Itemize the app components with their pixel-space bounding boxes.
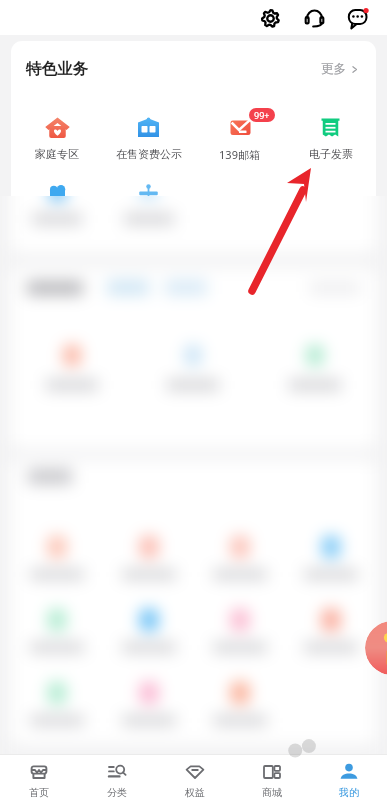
button[interactable]: 更多 xyxy=(321,61,358,77)
staticText: 家庭专区 xyxy=(35,147,79,161)
button[interactable] xyxy=(285,536,376,580)
button[interactable]: Customer service xyxy=(298,2,330,34)
button[interactable]: Promotion xyxy=(365,621,387,675)
button[interactable] xyxy=(194,682,285,726)
button[interactable] xyxy=(194,536,285,580)
button[interactable] xyxy=(194,536,285,580)
staticText: 139邮箱 xyxy=(219,147,260,162)
staticText: 权益 xyxy=(185,786,205,799)
button[interactable] xyxy=(11,181,103,225)
button[interactable] xyxy=(194,181,285,225)
staticText: 商城 xyxy=(262,786,282,799)
button[interactable]: 家庭专区 xyxy=(11,115,103,161)
button[interactable]: Messages xyxy=(342,2,374,34)
button[interactable] xyxy=(11,609,103,653)
button[interactable] xyxy=(11,682,103,726)
staticText: 更多 xyxy=(321,61,346,77)
staticText: 在售资费公示 xyxy=(116,147,182,161)
staticText: 更多 xyxy=(321,61,346,77)
staticText: 家庭专区 xyxy=(35,147,79,161)
button[interactable]: Customer service xyxy=(298,2,330,34)
button[interactable] xyxy=(103,609,194,653)
staticText: 特色业务 xyxy=(26,59,88,79)
button[interactable] xyxy=(285,181,376,225)
staticText: 首页 xyxy=(29,786,49,799)
button[interactable] xyxy=(194,609,285,653)
staticText: 99+ xyxy=(254,109,270,121)
button[interactable] xyxy=(194,181,285,225)
button[interactable]: 电子发票 xyxy=(285,115,376,161)
button[interactable] xyxy=(285,536,376,580)
staticText: 99+ xyxy=(254,109,270,121)
button[interactable] xyxy=(285,181,376,225)
button[interactable]: 权益 xyxy=(156,755,233,806)
button[interactable] xyxy=(11,536,103,580)
button[interactable]: 首页 xyxy=(0,755,78,806)
button[interactable]: Messages xyxy=(342,2,374,34)
staticText: 我的 xyxy=(339,786,359,799)
button[interactable] xyxy=(103,536,194,580)
staticText: 139邮箱 xyxy=(219,147,260,162)
button[interactable] xyxy=(103,536,194,580)
staticText: 电子发票 xyxy=(309,147,353,161)
button[interactable]: 分类 xyxy=(78,755,156,806)
button[interactable]: Settings xyxy=(254,2,286,34)
staticText: 分类 xyxy=(107,786,127,799)
button[interactable]: 在售资费公示 xyxy=(103,115,194,161)
button[interactable]: 在售资费公示 xyxy=(103,115,194,161)
staticText: 电子发票 xyxy=(309,147,353,161)
button[interactable]: 电子发票 xyxy=(285,115,376,161)
button[interactable]: 我的 xyxy=(310,755,387,806)
button[interactable]: 商城 xyxy=(233,755,310,806)
button[interactable] xyxy=(194,609,285,653)
button[interactable] xyxy=(103,181,194,225)
staticText: 在售资费公示 xyxy=(116,147,182,161)
button[interactable]: 更多 xyxy=(321,61,358,77)
button[interactable] xyxy=(285,609,376,653)
button[interactable] xyxy=(103,609,194,653)
button[interactable] xyxy=(194,682,285,726)
staticText: 特色业务 xyxy=(26,59,88,79)
button[interactable] xyxy=(11,682,103,726)
button[interactable] xyxy=(11,609,103,653)
button[interactable] xyxy=(11,536,103,580)
button[interactable] xyxy=(103,181,194,225)
button[interactable]: 99+ xyxy=(194,115,285,162)
button[interactable] xyxy=(11,181,103,225)
button[interactable]: 家庭专区 xyxy=(11,115,103,161)
button[interactable]: Settings xyxy=(254,2,286,34)
button[interactable] xyxy=(103,682,194,726)
button[interactable] xyxy=(103,682,194,726)
button[interactable]: 99+ xyxy=(194,115,285,162)
button[interactable] xyxy=(285,609,376,653)
